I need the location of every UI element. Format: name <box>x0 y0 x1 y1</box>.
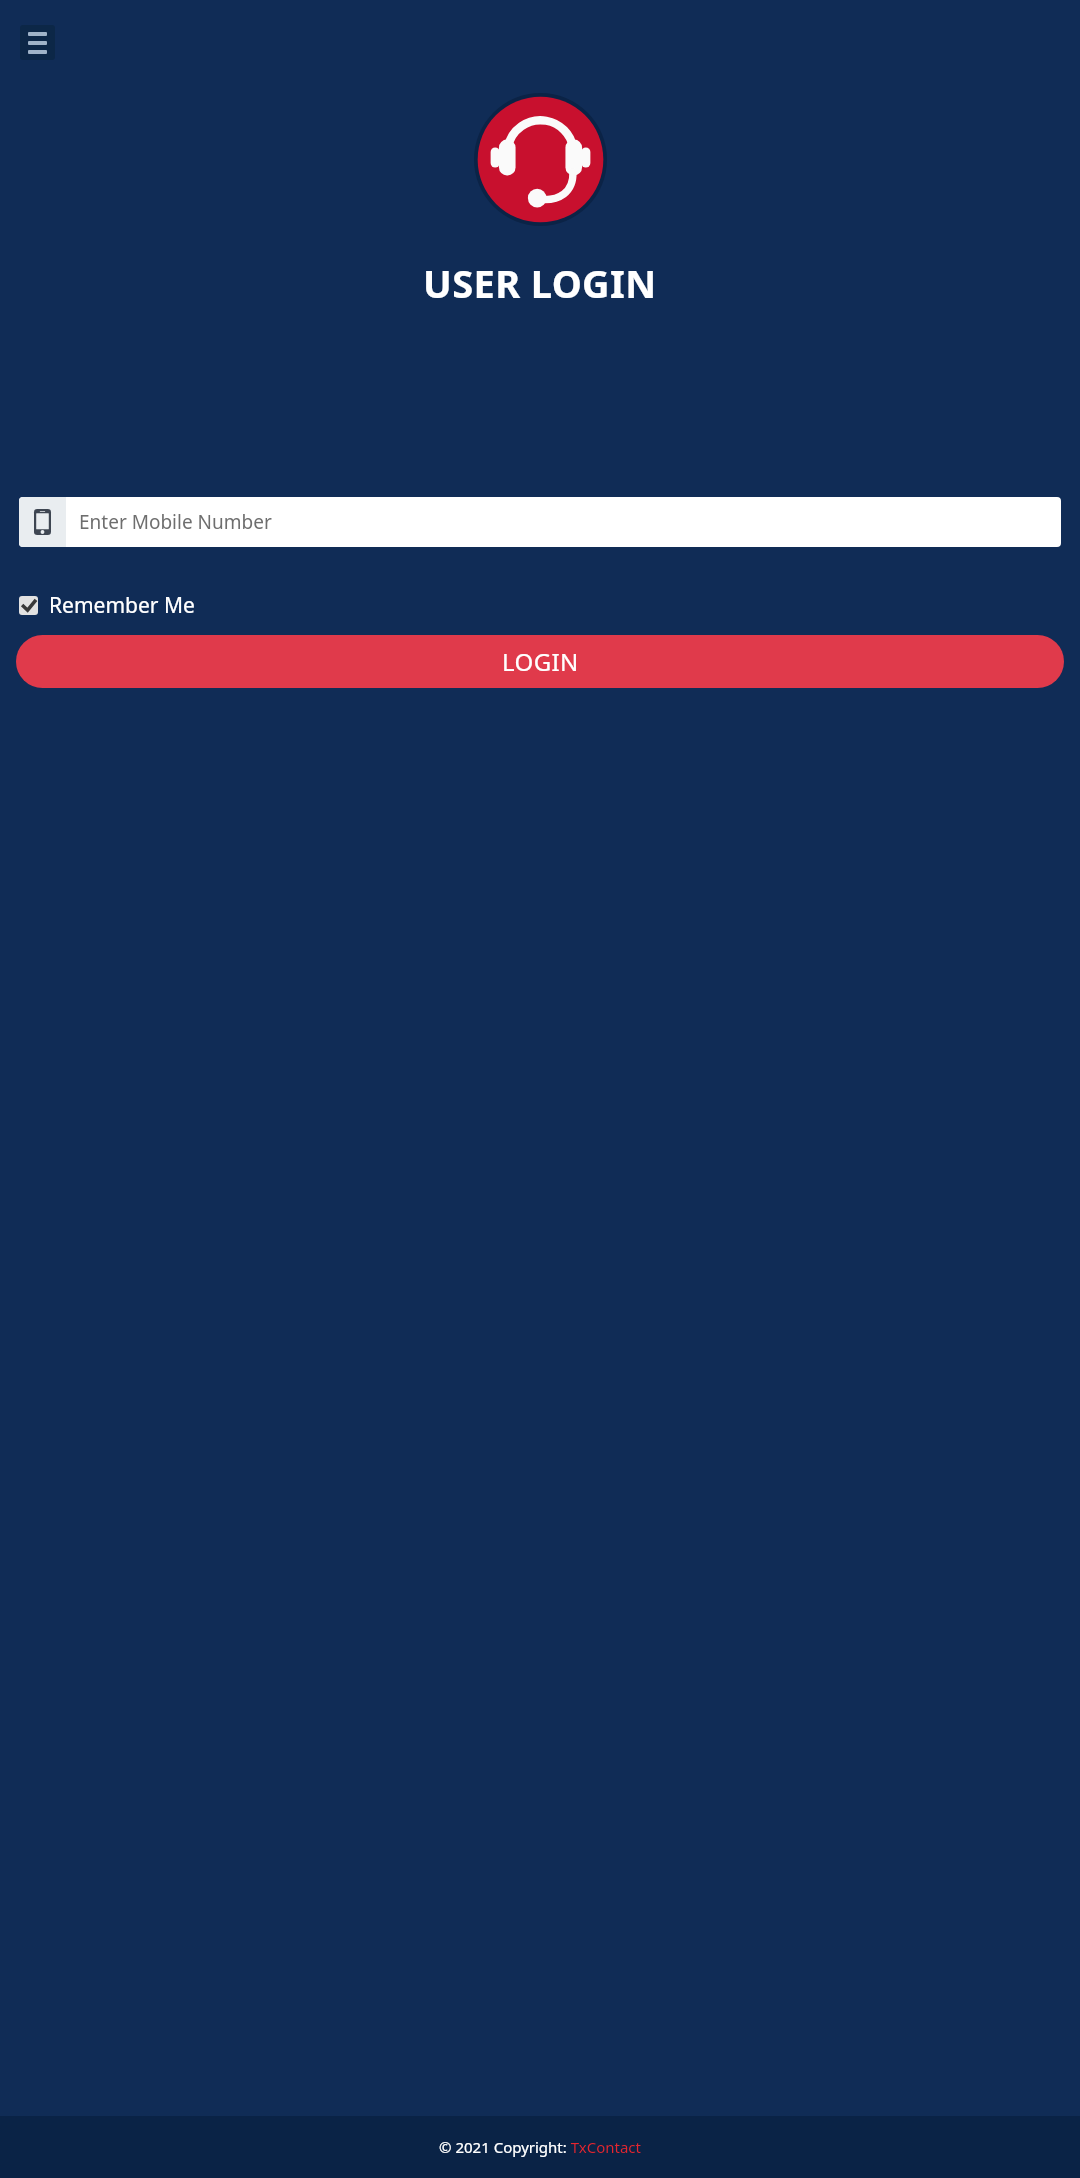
staticText: USER LOGIN <box>423 257 657 309</box>
staticText: © 2021 Copyright: TxContact <box>439 2137 641 2157</box>
staticText: LOGIN <box>502 645 579 678</box>
button[interactable]: LOGIN <box>16 635 1064 688</box>
staticText: Enter Mobile Number <box>79 509 272 535</box>
button[interactable]: Open navigation menu <box>20 25 55 60</box>
button[interactable]: Remember Me <box>19 591 195 620</box>
staticText: Remember Me <box>49 591 195 620</box>
button[interactable]: Enter Mobile Number <box>19 497 1061 547</box>
